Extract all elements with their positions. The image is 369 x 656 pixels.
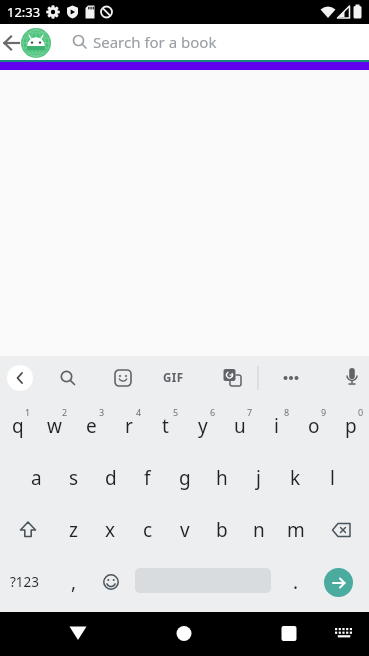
- button[interactable]: [324, 568, 353, 597]
- staticText: GIF: [163, 370, 184, 386]
- button[interactable]: t: [147, 400, 184, 452]
- staticText: i: [274, 413, 279, 439]
- button[interactable]: [53, 363, 83, 393]
- staticText: 5: [173, 406, 179, 418]
- button[interactable]: o: [295, 400, 332, 452]
- staticText: n: [253, 517, 265, 543]
- button[interactable]: [0, 504, 55, 556]
- staticText: y: [198, 413, 208, 439]
- button[interactable]: i: [258, 400, 295, 452]
- staticText: 6: [210, 406, 216, 418]
- button[interactable]: d: [92, 452, 129, 504]
- button[interactable]: [62, 619, 94, 649]
- staticText: g: [179, 465, 191, 491]
- staticText: c: [143, 517, 153, 543]
- staticText: j: [256, 465, 261, 491]
- button[interactable]: b: [203, 504, 240, 556]
- staticText: ?123: [10, 573, 40, 591]
- staticText: m: [287, 517, 305, 543]
- staticText: h: [216, 465, 228, 491]
- button[interactable]: w: [36, 400, 73, 452]
- button[interactable]: k: [277, 452, 314, 504]
- staticText: u: [234, 413, 246, 439]
- button[interactable]: p: [332, 400, 369, 452]
- button[interactable]: [330, 621, 358, 647]
- staticText: a: [31, 465, 42, 491]
- staticText: ,: [71, 569, 77, 595]
- staticText: q: [12, 413, 24, 439]
- button[interactable]: u: [221, 400, 258, 452]
- button[interactable]: ?123: [0, 556, 55, 608]
- staticText: 1: [25, 406, 31, 418]
- staticText: 4: [136, 406, 142, 418]
- staticText: b: [216, 517, 228, 543]
- button[interactable]: v: [166, 504, 203, 556]
- button[interactable]: Search for a book: [70, 24, 369, 60]
- button[interactable]: [337, 363, 367, 393]
- button[interactable]: [108, 363, 138, 393]
- button[interactable]: r: [110, 400, 147, 452]
- button[interactable]: [0, 26, 24, 58]
- staticText: 12:33: [7, 3, 41, 21]
- button[interactable]: .: [277, 556, 314, 608]
- button[interactable]: z: [55, 504, 92, 556]
- staticText: r: [125, 413, 133, 439]
- button[interactable]: [314, 504, 369, 556]
- button[interactable]: a: [18, 452, 55, 504]
- staticText: 9: [321, 406, 327, 418]
- staticText: k: [290, 465, 301, 491]
- staticText: .: [293, 569, 299, 595]
- button[interactable]: [168, 619, 200, 649]
- button[interactable]: f: [129, 452, 166, 504]
- staticText: e: [86, 413, 97, 439]
- button[interactable]: m: [277, 504, 314, 556]
- button[interactable]: c: [129, 504, 166, 556]
- staticText: v: [180, 517, 190, 543]
- button[interactable]: n: [240, 504, 277, 556]
- button[interactable]: y: [184, 400, 221, 452]
- button[interactable]: e: [73, 400, 110, 452]
- button[interactable]: h: [203, 452, 240, 504]
- button[interactable]: [217, 363, 247, 393]
- button[interactable]: j: [240, 452, 277, 504]
- staticText: z: [69, 517, 78, 543]
- button[interactable]: g: [166, 452, 203, 504]
- staticText: 2: [62, 406, 68, 418]
- staticText: p: [345, 413, 357, 439]
- staticText: x: [105, 517, 116, 543]
- staticText: f: [144, 465, 151, 491]
- button[interactable]: [273, 619, 305, 649]
- staticText: 7: [247, 406, 253, 418]
- button[interactable]: [92, 556, 129, 608]
- staticText: 8: [284, 406, 290, 418]
- staticText: w: [47, 413, 62, 439]
- button[interactable]: x: [92, 504, 129, 556]
- button[interactable]: [7, 365, 33, 391]
- staticText: l: [330, 465, 335, 491]
- staticText: t: [162, 413, 169, 439]
- button[interactable]: s: [55, 452, 92, 504]
- button[interactable]: GIF: [158, 363, 188, 393]
- button[interactable]: q: [0, 400, 36, 452]
- button[interactable]: l: [314, 452, 351, 504]
- staticText: o: [308, 413, 320, 439]
- button[interactable]: ,: [55, 556, 92, 608]
- staticText: Search for a book: [93, 32, 217, 52]
- staticText: 0: [358, 406, 364, 418]
- staticText: 3: [99, 406, 105, 418]
- button[interactable]: [276, 363, 306, 393]
- staticText: s: [69, 465, 79, 491]
- staticText: d: [105, 465, 117, 491]
